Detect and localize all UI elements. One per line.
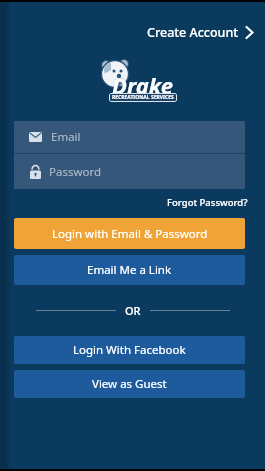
staticText: Create Account	[147, 24, 239, 41]
staticText: View as Guest	[92, 376, 167, 392]
staticText: Email Me a Link	[87, 262, 172, 278]
staticText: Drake	[112, 70, 174, 100]
button[interactable]: Email	[14, 121, 245, 153]
button[interactable]: View as Guest	[14, 370, 245, 398]
staticText: Email	[51, 129, 81, 145]
button[interactable]: Login With Facebook	[14, 336, 245, 364]
staticText: OR	[125, 303, 141, 318]
staticText: Login With Facebook	[73, 342, 186, 358]
button[interactable]: Forgot Password?	[167, 196, 248, 209]
button[interactable]: Login with Email & Password	[14, 218, 245, 249]
button[interactable]: Password	[14, 154, 245, 189]
staticText: Login with Email & Password	[52, 226, 208, 242]
staticText: RECREATIONAL SERVICES	[112, 94, 174, 101]
staticText: Password	[49, 164, 102, 180]
button[interactable]: Email Me a Link	[14, 255, 245, 285]
button[interactable]: Create Account	[147, 24, 253, 41]
